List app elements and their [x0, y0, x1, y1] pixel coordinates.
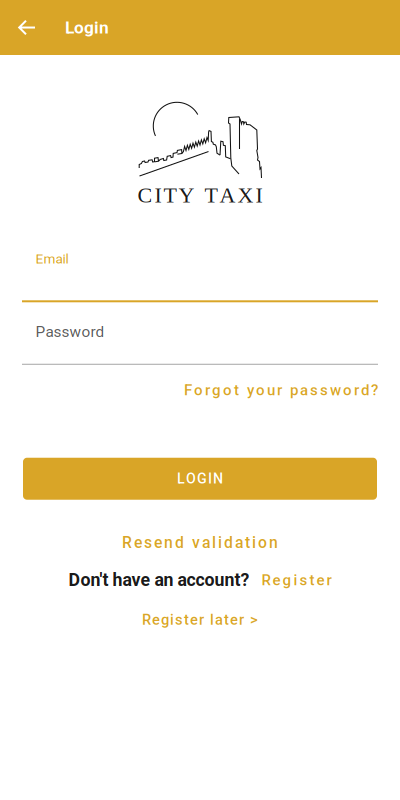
button[interactable]: Back: [9, 5, 45, 49]
staticText: Email: [35, 251, 68, 267]
staticText: C I T Y T A X I: [137, 183, 262, 207]
button[interactable]: L O G I N: [23, 458, 377, 500]
staticText: R e g i s t e r: [261, 571, 331, 589]
staticText: Login: [65, 17, 109, 38]
staticText: F o r g o t y o u r p a s s w o r d ?: [184, 381, 378, 399]
staticText: R e g i s t e r l a t e r >: [142, 611, 258, 628]
staticText: L O G I N: [177, 470, 223, 487]
staticText: Don't have an account?: [68, 570, 249, 590]
button[interactable]: F o r g o t y o u r p a s s w o r d ?: [184, 376, 378, 404]
staticText: R e s e n d v a l i d a t i o n: [122, 533, 278, 552]
staticText: Password: [35, 323, 104, 341]
button[interactable]: R e g i s t e r l a t e r >: [142, 607, 258, 632]
button[interactable]: R e g i s t e r: [261, 567, 331, 593]
button[interactable]: R e s e n d v a l i d a t i o n: [122, 529, 278, 556]
